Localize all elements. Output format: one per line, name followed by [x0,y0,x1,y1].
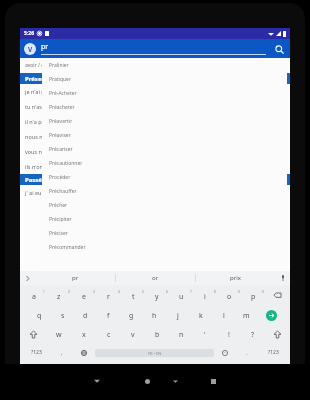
staticText: Prêcher [49,202,68,209]
staticText: 2 [68,290,70,294]
button[interactable]: ! [217,325,241,344]
button[interactable]: y [145,287,169,306]
button[interactable]: Voice input [275,271,290,285]
button[interactable]: Shift right [265,325,289,344]
button[interactable]: h [143,306,166,325]
button[interactable]: Prêcher [42,198,287,212]
staticText: 8 [214,290,216,294]
staticText: ?123 [268,349,279,356]
button[interactable]: Change language [73,344,95,361]
button[interactable]: i [193,287,217,306]
staticText: t [132,292,135,302]
staticText: Préavertir [49,118,73,125]
staticText: je n'ai pas [25,88,51,95]
button[interactable]: Préavertir [42,114,287,128]
staticText: y [155,292,159,302]
staticText: ' [204,330,206,340]
staticText: Présent [25,75,48,83]
staticText: or [152,274,159,282]
button[interactable]: ' [193,325,217,344]
button[interactable]: t [121,287,145,306]
staticText: 4 [118,290,120,294]
staticText: Préaviser [49,132,71,139]
staticText: Préciser [49,230,68,237]
staticText: l [223,311,225,321]
button[interactable]: c [96,325,121,344]
button[interactable]: Pratiquer [42,72,287,86]
button[interactable]: ? [241,325,265,344]
button[interactable]: j [166,306,189,325]
button[interactable]: x [71,325,96,344]
button[interactable]: ?123 [22,344,51,361]
button[interactable]: Expand suggestions [20,271,35,285]
staticText: vous n'avez [25,148,55,155]
staticText: pr [41,42,49,52]
button[interactable]: Search [272,42,286,56]
button[interactable]: m [235,306,258,325]
staticText: 5 [142,290,144,294]
button[interactable]: Verb app logo [24,43,36,55]
button[interactable]: Préaviser [42,128,287,142]
button[interactable]: Préchauffer [42,184,287,198]
button[interactable]: f [97,306,120,325]
button[interactable]: Précariser [42,142,287,156]
staticText: s [61,311,65,321]
button[interactable]: Enter [258,306,284,325]
staticText: 1 [43,290,45,294]
button[interactable]: Précipiter [42,212,287,226]
button[interactable]: Home [137,371,157,391]
staticText: Précariser [49,146,73,153]
button[interactable]: b [145,325,169,344]
button[interactable]: FR • EN [95,349,214,357]
button[interactable]: Précautionner [42,156,287,170]
staticText: e [82,292,86,302]
button[interactable]: Pré-Acheter [42,86,287,100]
button[interactable]: n [169,325,193,344]
staticText: z [57,292,61,302]
button[interactable]: Emoji [214,344,236,361]
button[interactable]: a [21,287,46,306]
button[interactable]: pr [35,271,115,285]
button[interactable]: Hide keyboard [167,373,183,389]
staticText: 3 [93,290,95,294]
staticText: Préchauffer [49,188,77,195]
button[interactable]: r [96,287,121,306]
button[interactable]: q [27,306,51,325]
button[interactable]: s [51,306,74,325]
button[interactable]: v [121,325,145,344]
staticText: q [37,311,42,321]
button[interactable]: p [241,287,265,306]
staticText: Précautionner [49,160,83,167]
button[interactable]: Backspace [265,287,289,306]
button[interactable]: u [169,287,193,306]
staticText: f [107,311,110,321]
button[interactable]: Préacheter [42,100,287,114]
button[interactable]: k [189,306,212,325]
button[interactable]: d [74,306,97,325]
button[interactable]: w [46,325,71,344]
button[interactable]: z [46,287,71,306]
button[interactable]: Préciser [42,226,287,240]
staticText: ?123 [31,349,42,356]
staticText: Précipiter [49,216,72,223]
staticText: pr [72,274,79,282]
button[interactable]: e [71,287,96,306]
button[interactable]: g [120,306,143,325]
button[interactable]: Pralinier [42,58,287,72]
staticText: Préacheter [49,104,75,111]
button[interactable]: prix [196,271,275,285]
staticText: Précommander [49,244,86,251]
button[interactable]: ?123 [258,344,288,361]
button[interactable]: Recent apps [203,371,223,391]
button[interactable]: o [217,287,241,306]
button[interactable]: Précommander [42,240,287,254]
staticText: FR • EN [148,351,162,356]
button[interactable]: Shift [21,325,46,344]
button[interactable]: l [212,306,235,325]
button[interactable]: Procéder [42,170,287,184]
button[interactable]: or [116,271,195,285]
button[interactable]: , [51,344,73,361]
button[interactable]: Back [87,371,107,391]
staticText: tu n'as pas [25,103,53,110]
